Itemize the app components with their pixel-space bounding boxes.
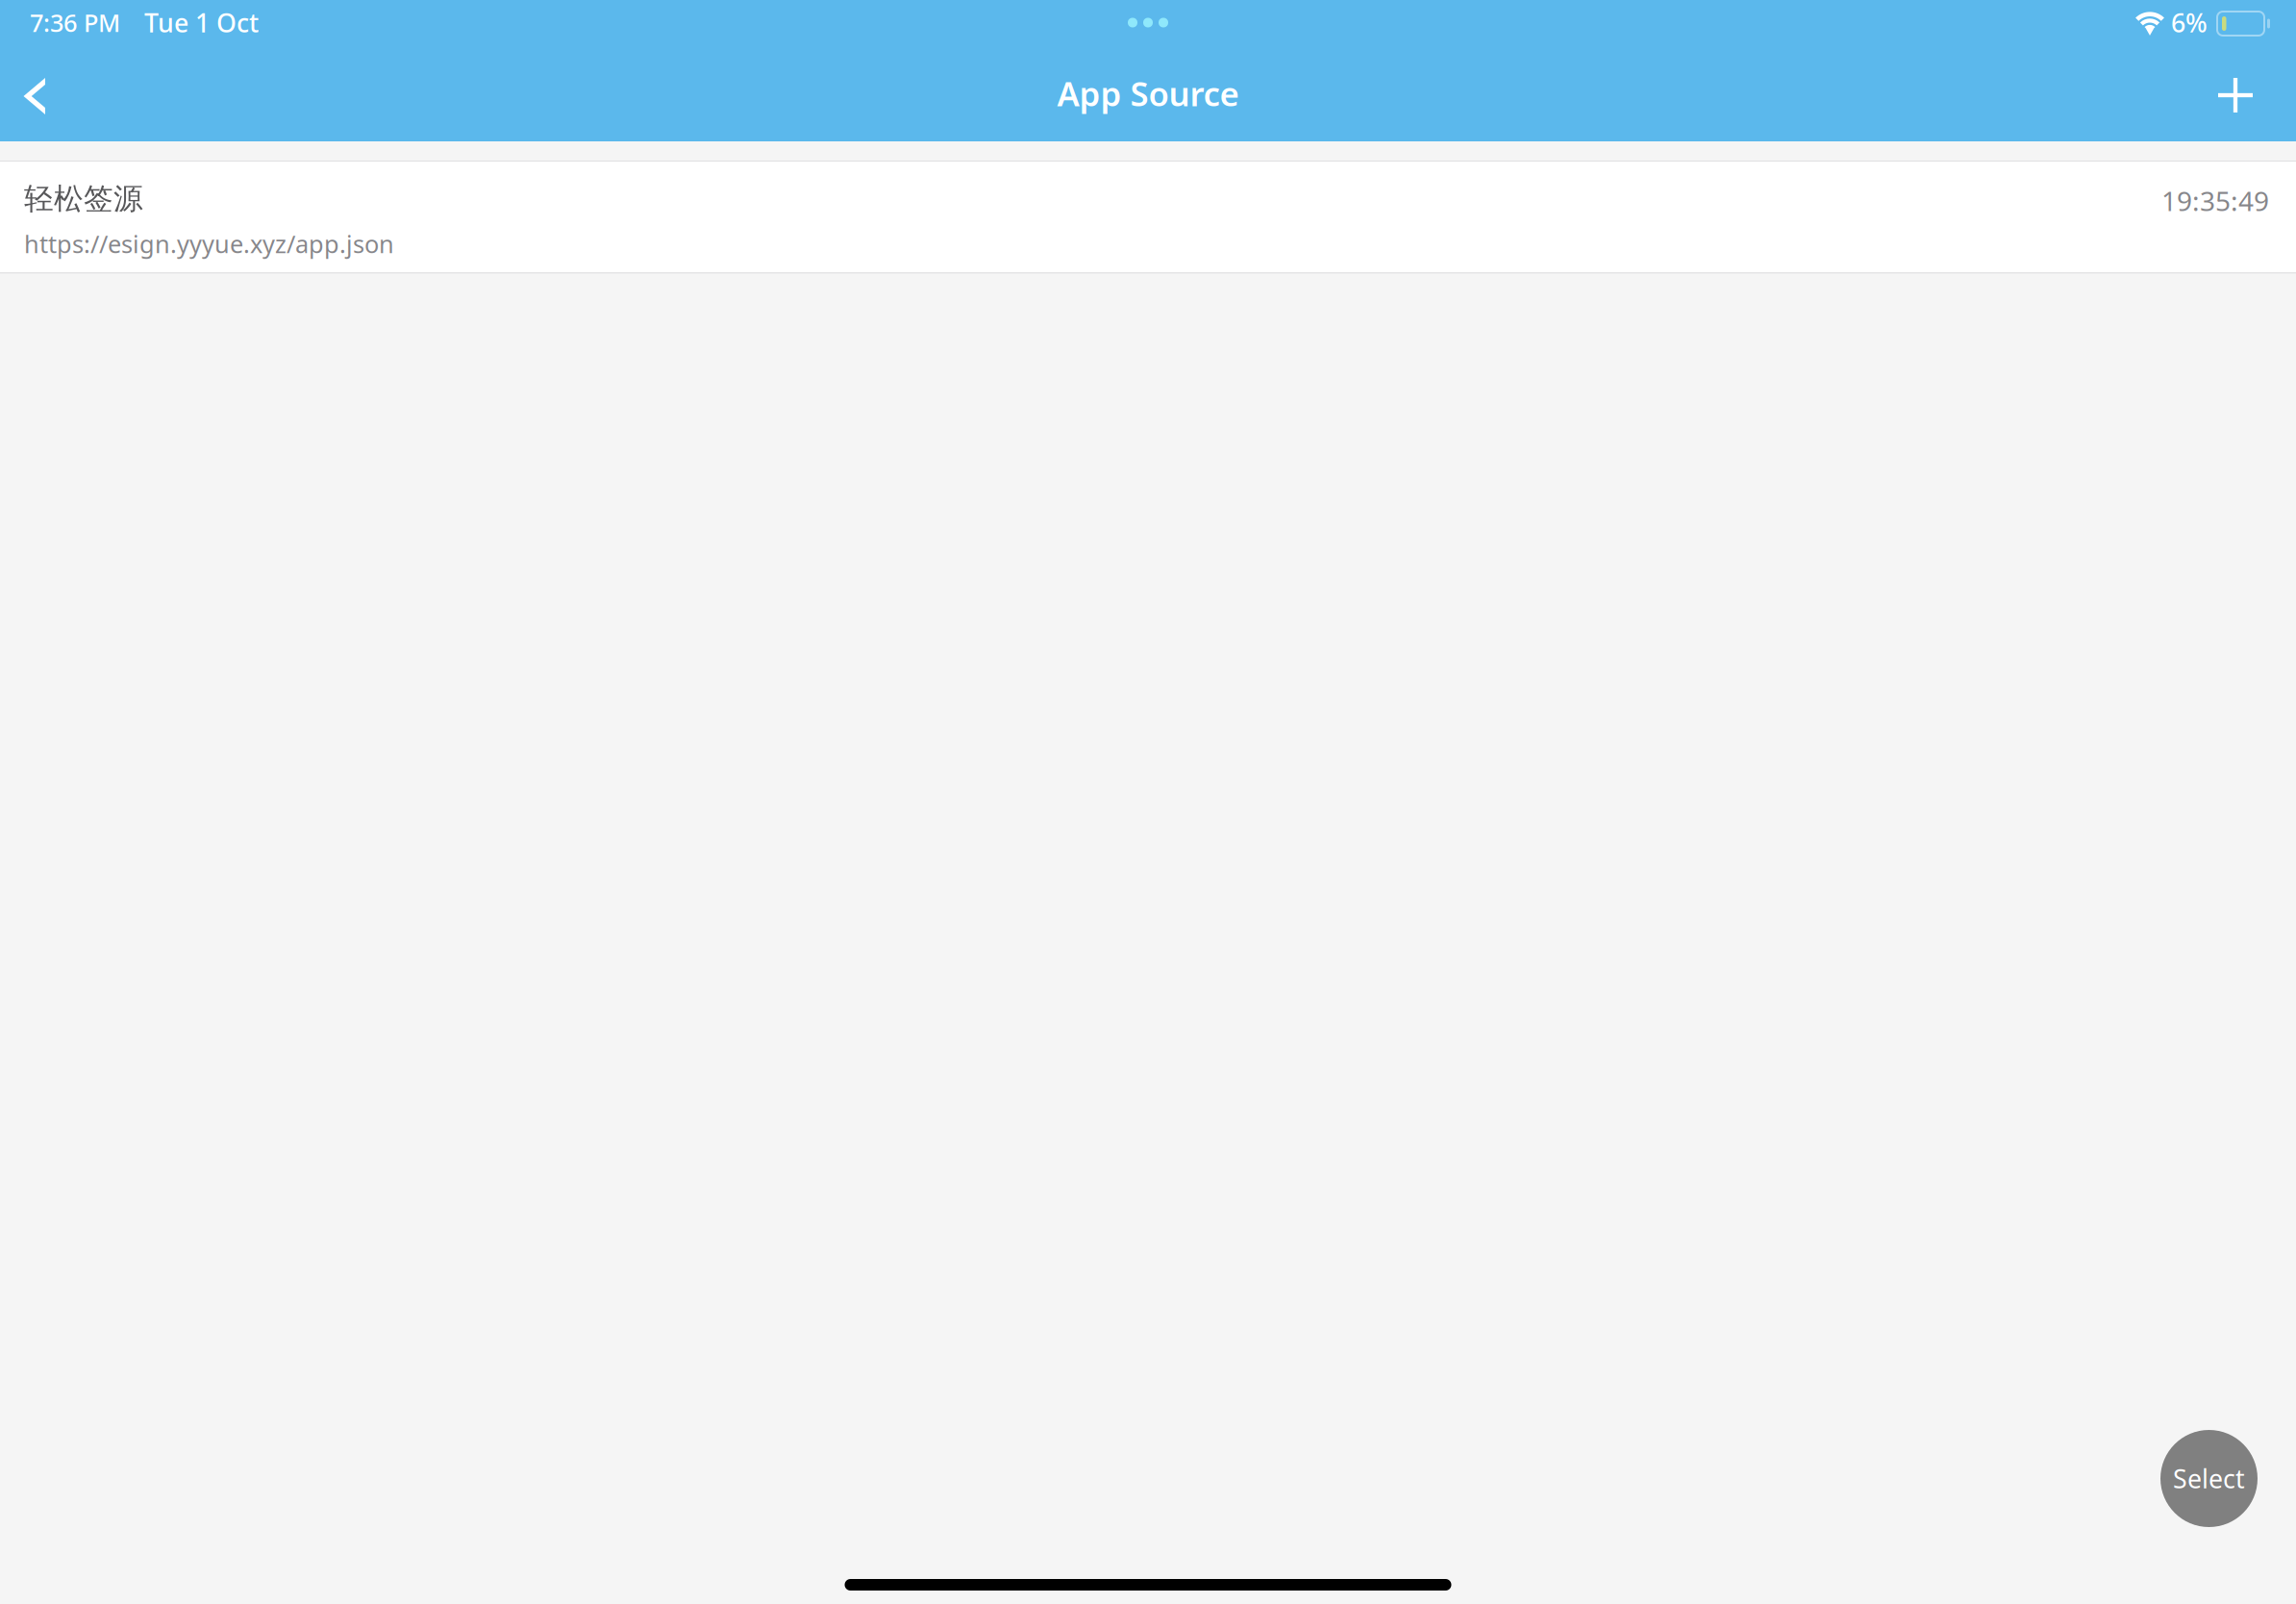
button[interactable]: Back [2,45,67,141]
staticText: 19:35:49 [2161,183,2269,218]
staticText: Tue 1 Oct [144,6,259,40]
staticText: 轻松签源 [24,181,143,217]
staticText: 6% [2171,6,2208,40]
button[interactable]: Add [2203,45,2268,141]
staticText: App Source [1057,71,1239,115]
button[interactable]: Select [2160,1430,2258,1527]
staticText: 7:36 PM [30,6,120,39]
button[interactable]: 轻松签源 [0,162,2296,272]
staticText: https://esign.yyyue.xyz/app.json [24,228,394,260]
staticText: Select [2173,1461,2245,1496]
